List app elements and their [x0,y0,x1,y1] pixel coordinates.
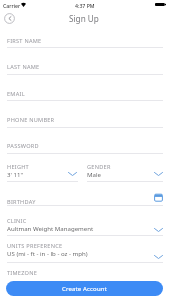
staticText: Male [87,170,101,178]
button[interactable] [0,136,169,161]
staticText: Carrier [3,2,21,9]
staticText: PHONE NUMBER [7,116,55,124]
staticText: HEIGHT [7,163,29,171]
staticText: US (mi - ft - in - lb - oz - mph) [7,249,88,257]
staticText: PASSWORD [7,142,39,150]
button[interactable] [0,57,169,82]
staticText: BIRTHDAY [7,198,36,206]
staticText: 4:37 PM [75,2,95,9]
staticText: EMAIL [7,90,25,98]
button[interactable] [0,158,84,182]
staticText: Sign Up [69,13,99,24]
button[interactable] [0,212,169,234]
staticText: UNITS PREFERENCE [7,242,63,250]
staticText: CLINIC [7,217,27,225]
staticText: 3' 11" [7,170,23,178]
button[interactable] [0,84,169,109]
staticText: TIMEZONE [7,269,38,277]
staticText: LAST NAME [7,63,40,71]
button[interactable] [0,239,169,261]
button[interactable] [0,110,169,135]
button[interactable] [0,31,169,56]
button[interactable] [0,193,169,209]
staticText: GENDER [87,163,111,171]
staticText: Aultman Weight Management [7,224,94,232]
button[interactable]: Create Account [6,281,163,296]
button[interactable] [84,158,169,182]
staticText: Create Account [62,285,107,293]
staticText: FIRST NAME [7,37,42,45]
button[interactable]: Back [1,10,18,27]
